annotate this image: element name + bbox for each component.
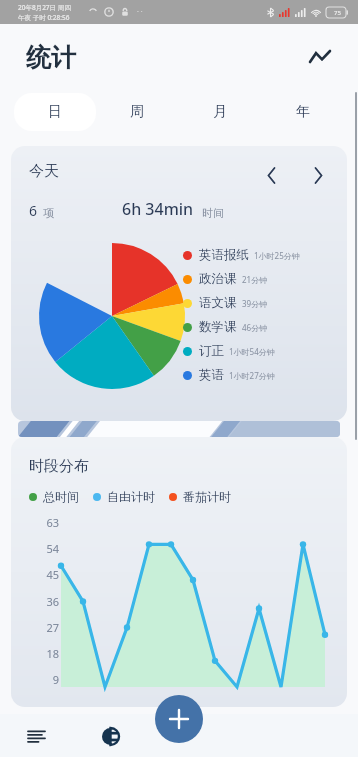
staticText: 周 bbox=[130, 103, 144, 121]
staticText: 午夜 子时 0:28:56 bbox=[18, 13, 70, 22]
staticText: 自由计时 bbox=[107, 489, 155, 504]
staticText: 45 bbox=[46, 567, 59, 582]
staticText: 63 bbox=[46, 515, 59, 530]
staticText: 语文课 bbox=[199, 295, 237, 311]
button[interactable]: 英语 bbox=[183, 363, 347, 387]
staticText: 数学课 bbox=[199, 319, 237, 335]
staticText: 1小时27分钟 bbox=[229, 370, 275, 381]
button[interactable]: Menu bbox=[18, 718, 54, 754]
button[interactable]: 政治课 bbox=[183, 267, 347, 291]
button[interactable]: 今天 bbox=[11, 146, 347, 421]
staticText: 政治课 bbox=[199, 271, 237, 287]
button[interactable]: Previous bbox=[259, 162, 285, 188]
button[interactable]: 年 bbox=[261, 93, 344, 131]
staticText: 20年8月27日 周四 bbox=[18, 3, 71, 12]
staticText: 6 bbox=[29, 201, 38, 220]
staticText: 1小时25分钟 bbox=[254, 250, 300, 261]
button[interactable]: 番茄计时 bbox=[169, 489, 231, 504]
button[interactable]: Next bbox=[305, 162, 331, 188]
button[interactable]: 日 bbox=[14, 93, 96, 131]
staticText: 36 bbox=[46, 594, 59, 609]
button[interactable]: Statistics bbox=[92, 718, 128, 754]
button[interactable]: 自由计时 bbox=[93, 489, 155, 504]
staticText: 27 bbox=[46, 620, 59, 635]
staticText: 月 bbox=[213, 103, 227, 121]
button[interactable]: 语文课 bbox=[183, 291, 347, 315]
button[interactable]: 订正 bbox=[183, 339, 347, 363]
button[interactable]: 周 bbox=[96, 93, 178, 131]
staticText: 18 bbox=[46, 646, 59, 661]
button[interactable]: Add bbox=[155, 695, 203, 743]
button[interactable]: Trends bbox=[302, 39, 338, 75]
staticText: 9 bbox=[52, 672, 59, 687]
staticText: 21分钟 bbox=[242, 274, 268, 285]
staticText: 时间 bbox=[202, 206, 224, 220]
staticText: 番茄计时 bbox=[183, 489, 231, 504]
staticText: 今天 bbox=[29, 162, 59, 181]
button[interactable] bbox=[18, 421, 340, 437]
staticText: 项 bbox=[43, 206, 54, 220]
staticText: 54 bbox=[46, 541, 59, 556]
staticText: 6h 34min bbox=[122, 198, 194, 220]
button[interactable]: 月 bbox=[178, 93, 261, 131]
staticText: 英语报纸 bbox=[199, 247, 249, 263]
staticText: 英语 bbox=[199, 367, 224, 383]
button[interactable]: 英语报纸 bbox=[183, 243, 347, 267]
button[interactable]: 时段分布 bbox=[11, 437, 347, 707]
button[interactable]: 数学课 bbox=[183, 315, 347, 339]
staticText: 日 bbox=[48, 103, 62, 121]
staticText: 39分钟 bbox=[242, 298, 268, 309]
staticText: 总时间 bbox=[43, 489, 79, 504]
staticText: · · bbox=[137, 7, 143, 17]
button[interactable]: 总时间 bbox=[29, 489, 79, 504]
staticText: 46分钟 bbox=[242, 322, 268, 333]
staticText: 年 bbox=[296, 103, 310, 121]
staticText: 统计 bbox=[26, 42, 76, 73]
staticText: 时段分布 bbox=[29, 457, 89, 476]
staticText: 1小时54分钟 bbox=[229, 346, 275, 357]
staticText: 订正 bbox=[199, 343, 224, 359]
staticText: 75 bbox=[334, 9, 341, 17]
